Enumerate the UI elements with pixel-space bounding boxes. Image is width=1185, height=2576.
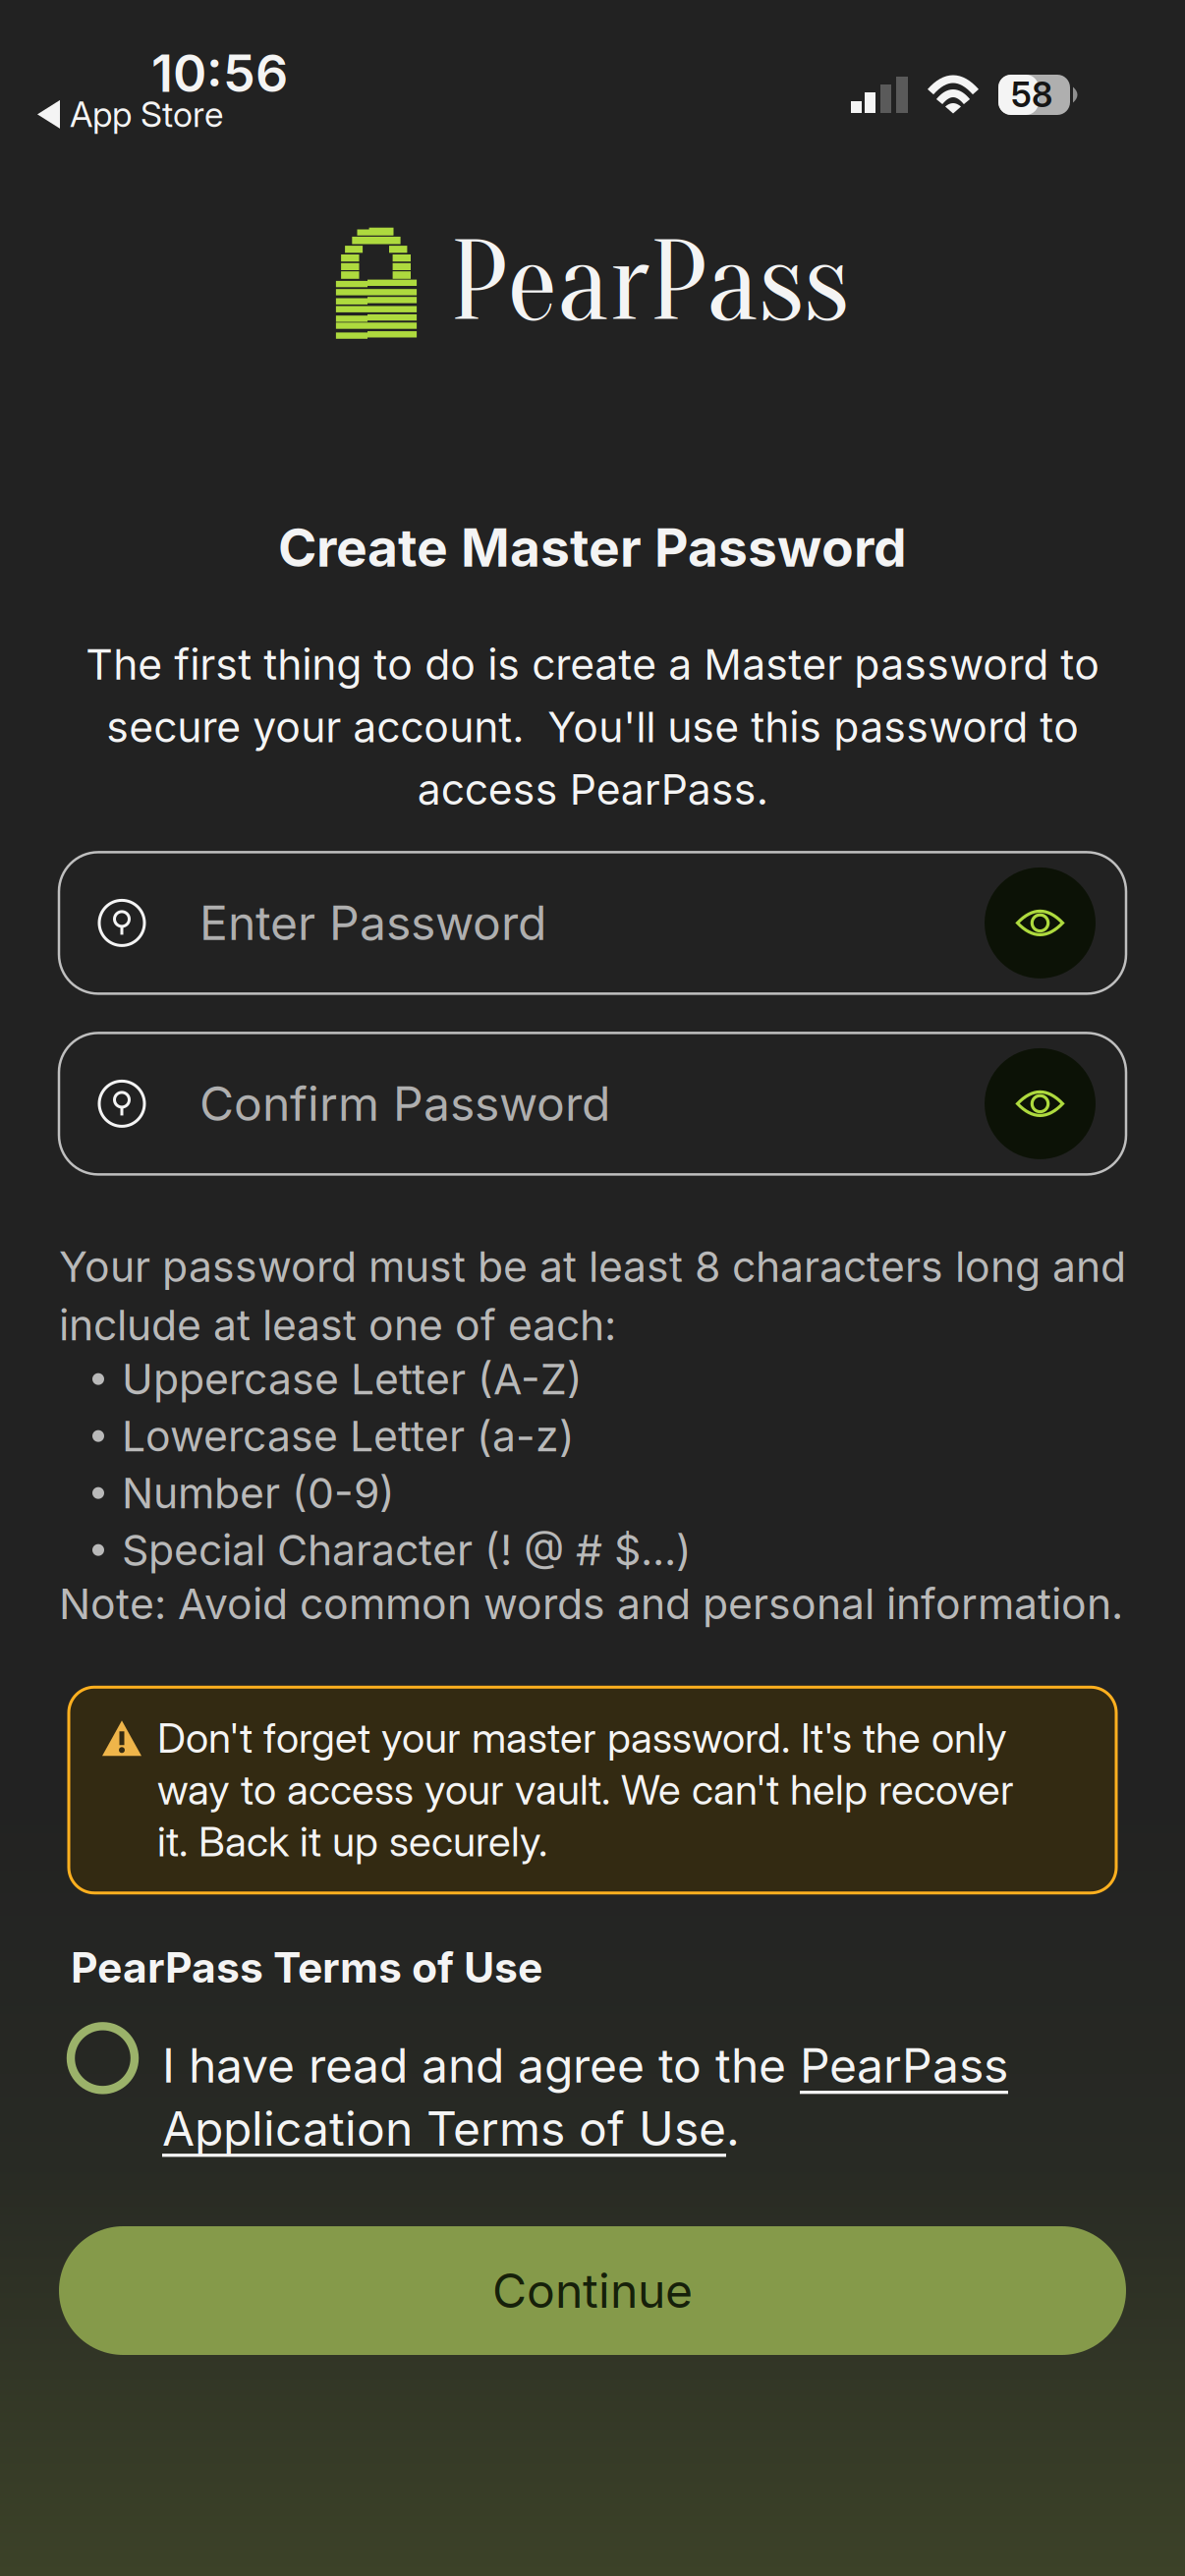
button[interactable]: Back to App Store — [37, 93, 223, 135]
staticText: Enter Password — [199, 894, 546, 952]
staticText: Don't forget your master password. It's … — [157, 1713, 1014, 1866]
staticText: I have read and agree to the PearPass Ap… — [162, 2037, 1008, 2157]
staticText: Lowercase Letter (a-z) — [122, 1411, 575, 1461]
staticText: Confirm Password — [199, 1075, 610, 1132]
button[interactable]: Show Enter Password — [985, 867, 1096, 978]
staticText: Note: Avoid common words and personal in… — [59, 1579, 1123, 1629]
staticText: Number (0-9) — [122, 1468, 395, 1518]
staticText: 10:56 — [151, 42, 288, 104]
button[interactable]: I have read and agree to the PearPass Ap… — [71, 2037, 1126, 2157]
staticText: Continue — [492, 2262, 693, 2319]
staticText: The first thing to do is create a Master… — [85, 639, 1100, 815]
button[interactable]: Show Confirm Password — [985, 1048, 1096, 1159]
staticText: Your password must be at least 8 charact… — [59, 1241, 1126, 1351]
staticText: 58 — [1011, 74, 1052, 115]
staticText: Create Master Password — [278, 516, 907, 579]
staticText: App Store — [70, 93, 223, 135]
button[interactable]: PearPass — [336, 225, 849, 341]
staticText: Special Character (! @ # $...) — [122, 1525, 692, 1575]
staticText: PearPass — [450, 218, 849, 348]
button[interactable]: Continue — [59, 2226, 1126, 2355]
staticText: PearPass Terms of Use — [71, 1942, 542, 1993]
staticText: Uppercase Letter (A-Z) — [122, 1354, 583, 1404]
